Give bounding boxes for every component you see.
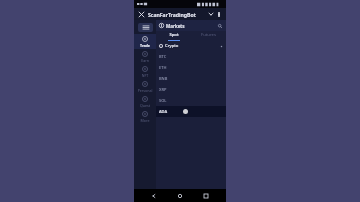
button[interactable]: Recent apps — [200, 190, 212, 202]
staticText: BTC — [159, 54, 167, 59]
staticText: ScanFarTradingBot — [148, 11, 207, 18]
staticText: Personal — [134, 88, 156, 93]
button[interactable]: Crypto — [156, 41, 226, 51]
button[interactable]: BTC — [156, 51, 226, 62]
staticText: More — [134, 118, 156, 123]
button[interactable]: Back — [148, 190, 160, 202]
button[interactable]: BNB — [156, 73, 226, 84]
staticText: ETH — [159, 65, 167, 70]
button[interactable]: NFT — [134, 64, 156, 79]
button[interactable]: Quest — [134, 94, 156, 109]
staticText: Markets — [166, 23, 216, 29]
button[interactable]: XRP — [156, 84, 226, 95]
staticText: ADA — [159, 109, 168, 114]
button[interactable]: Earn — [134, 49, 156, 64]
button[interactable]: Search — [216, 22, 223, 29]
staticText: NFT — [134, 73, 156, 78]
button[interactable]: Markets — [156, 20, 226, 31]
staticText: BNB — [159, 76, 168, 81]
staticText: Spot — [169, 32, 179, 38]
button[interactable]: Trade — [134, 34, 156, 49]
button[interactable]: Expand — [207, 10, 215, 18]
staticText: Earn — [134, 58, 156, 63]
button[interactable]: Menu — [138, 23, 153, 32]
button[interactable]: More — [134, 109, 156, 124]
button[interactable]: Futures — [191, 31, 226, 41]
button[interactable]: Home — [174, 190, 186, 202]
staticText: Crypto — [165, 43, 179, 49]
button[interactable]: Close — [137, 10, 146, 19]
staticText: XRP — [159, 87, 167, 92]
staticText: Futures — [201, 32, 216, 38]
button[interactable]: Personal — [134, 79, 156, 94]
staticText: SOL — [159, 98, 167, 103]
staticText: Quest — [134, 103, 156, 108]
button[interactable]: SOL — [156, 95, 226, 106]
button[interactable]: More options — [215, 10, 223, 18]
button[interactable]: ETH — [156, 62, 226, 73]
button[interactable]: Spot — [156, 31, 191, 41]
staticText: Trade — [134, 43, 156, 48]
button[interactable]: ADA — [156, 106, 226, 117]
